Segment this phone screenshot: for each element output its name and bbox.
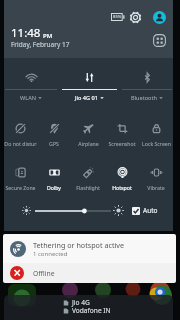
staticText: Vibrate [147, 184, 165, 191]
staticText: Hotspot [112, 184, 132, 191]
staticText: Friday, February 17 [11, 40, 70, 49]
staticText: GPS [49, 140, 59, 147]
staticText: Offline [33, 269, 55, 278]
staticText: Lock Screen [142, 140, 171, 147]
button[interactable]: Bluetooth [121, 58, 173, 106]
button[interactable]: Tethering or hotspot active [3, 234, 176, 263]
staticText: WLAN [20, 94, 36, 102]
staticText: 85% [113, 14, 122, 20]
staticText: Dolby [47, 184, 61, 191]
staticText: Jio 4G [72, 298, 90, 307]
button[interactable]: WLAN [4, 58, 58, 106]
button[interactable]: Flashlight [71, 167, 105, 193]
staticText: PM [43, 32, 53, 40]
button[interactable]: Airplane [71, 123, 105, 149]
button[interactable]: GPS [37, 123, 71, 149]
button[interactable]: Lock Screen [139, 123, 173, 149]
button[interactable]: User profile [153, 11, 166, 24]
button[interactable]: Hotspot [105, 167, 139, 193]
button[interactable]: Offline [3, 263, 176, 283]
staticText: Screenshot [108, 140, 136, 147]
staticText: 1 connected [33, 250, 68, 258]
staticText: Flashlight [76, 184, 100, 191]
staticText: Auto [143, 206, 158, 215]
button[interactable]: Settings [129, 11, 142, 24]
button[interactable]: Do not disturb [4, 123, 37, 149]
button[interactable]: Auto [132, 205, 158, 216]
button[interactable]: Secure Zone [4, 167, 37, 193]
staticText: Tethering or hotspot active [33, 240, 125, 250]
button[interactable]: Dolby [37, 167, 71, 193]
button[interactable]: Screenshot [105, 123, 139, 149]
button[interactable]: Jio 4G 01 [61, 58, 118, 106]
button[interactable]: Jio 4G [4, 295, 173, 320]
button[interactable]: Vibrate [139, 167, 173, 193]
staticText: Airplane [78, 140, 99, 147]
staticText: Secure Zone [5, 184, 36, 191]
staticText: Jio 4G 01 [75, 94, 98, 102]
staticText: 11:48 [11, 25, 41, 41]
button[interactable]: Edit tiles [153, 34, 166, 47]
button[interactable]: Brightness [35, 207, 111, 215]
staticText: Bluetooth [131, 94, 157, 102]
staticText: Do not disturb [4, 140, 37, 147]
staticText: Vodafone IN [72, 306, 111, 315]
